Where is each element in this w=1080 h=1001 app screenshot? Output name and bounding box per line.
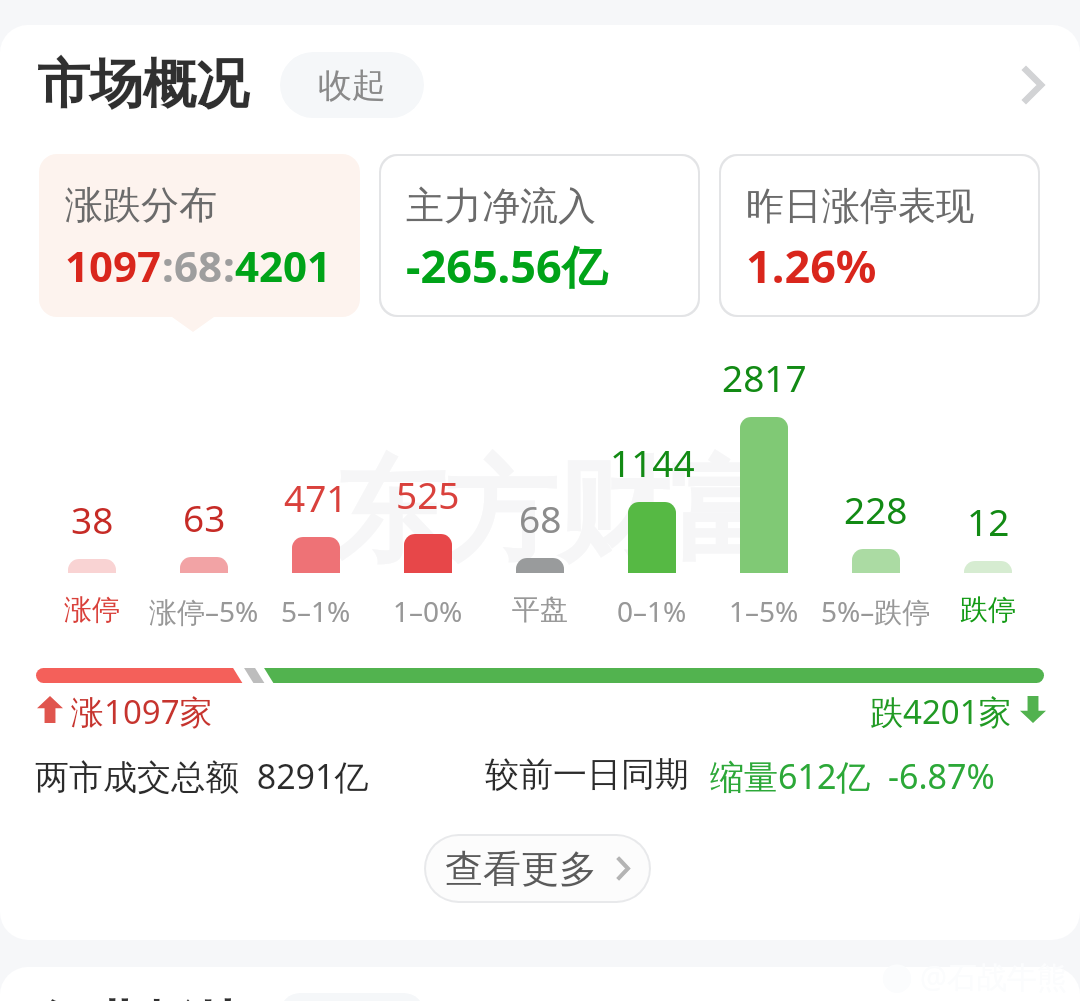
staticText: 4201 (235, 237, 332, 294)
staticText: 缩量612亿 -6.87% (710, 753, 995, 799)
staticText: 涨停 (64, 592, 120, 627)
staticText: 查看更多 (445, 845, 597, 893)
staticText: 行业板块 (37, 993, 249, 1001)
staticText: 跌4201家 (870, 689, 1012, 729)
button[interactable]: Open market overview (1006, 55, 1060, 115)
button[interactable]: 主力净流入 (381, 156, 698, 315)
staticText: 228 (844, 484, 908, 534)
staticText: 市场概况 (37, 51, 249, 118)
staticText: 525 (396, 469, 460, 519)
staticText: 涨跌分布 (65, 181, 217, 229)
staticText: : (162, 237, 174, 294)
staticText: 5%–跌停 (821, 592, 931, 630)
staticText: 1–0% (393, 592, 463, 630)
staticText: 2817 (722, 352, 807, 402)
staticText: 68 (174, 237, 223, 294)
staticText: -265.56亿 (406, 235, 607, 296)
staticText: 昨日涨停表现 (746, 182, 974, 230)
staticText: 68 (519, 493, 562, 543)
staticText: @石战牛熊 (920, 956, 1067, 997)
staticText: 东方财富 (333, 442, 781, 583)
staticText: 63 (183, 492, 226, 542)
staticText: 平盘 (512, 592, 568, 627)
staticText: 两市成交总额 8291亿 (35, 753, 369, 799)
button[interactable]: 昨日涨停表现 (721, 156, 1038, 315)
staticText: 涨停–5% (149, 592, 259, 630)
staticText: 38 (71, 494, 114, 544)
staticText: 5–1% (281, 592, 351, 630)
button[interactable]: 收起 (280, 52, 424, 118)
staticText: 12 (967, 496, 1010, 546)
button[interactable]: 涨跌分布 (39, 154, 360, 317)
staticText: 1–5% (729, 592, 799, 630)
staticText: 涨1097家 (71, 689, 213, 729)
staticText: 1144 (610, 437, 695, 487)
staticText: : (223, 237, 235, 294)
staticText: 0–1% (617, 592, 687, 630)
staticText: 主力净流入 (406, 182, 596, 230)
button[interactable]: 查看更多 (426, 836, 649, 901)
staticText: 471 (284, 472, 348, 522)
staticText: 1097 (65, 237, 162, 294)
staticText: 1.26% (746, 235, 877, 296)
staticText: 收起 (318, 64, 386, 107)
staticText: 较前一日同期 (485, 753, 689, 796)
staticText: 跌停 (960, 592, 1016, 627)
